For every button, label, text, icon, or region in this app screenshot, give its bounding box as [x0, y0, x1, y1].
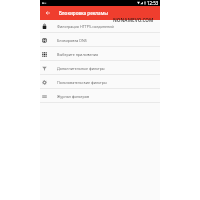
staticText: Дополнительные фильтры [57, 66, 105, 71]
button[interactable]: Пользовательские фильтры [40, 75, 160, 89]
button[interactable]: Дополнительные фильтры [40, 61, 160, 75]
staticText: NONAMEVO.COM [113, 17, 154, 23]
button[interactable]: Выберите приложения [40, 47, 160, 61]
button[interactable]: Блокировка DNS [40, 33, 160, 47]
staticText: Блокировка DNS [57, 38, 87, 43]
staticText: Выберите приложения [57, 52, 99, 57]
button[interactable]: Фильтрация HTTPS-соединений [40, 20, 160, 33]
button[interactable]: Журнал фильтров [40, 89, 160, 103]
button[interactable]: Back [40, 6, 55, 20]
staticText: Блокировка рекламы [59, 10, 108, 16]
staticText: Журнал фильтров [57, 94, 90, 99]
staticText: 12:53 [147, 0, 159, 6]
staticText: Фильтрация HTTPS-соединений [57, 24, 114, 29]
staticText: Пользовательские фильтры [57, 80, 107, 85]
